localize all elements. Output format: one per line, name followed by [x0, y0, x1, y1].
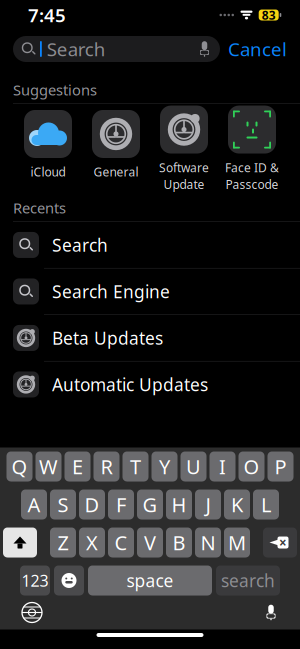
button[interactable]: Delete [263, 527, 297, 557]
staticText: B [172, 529, 185, 556]
button[interactable]: T [122, 451, 148, 481]
button[interactable]: Search [0, 222, 300, 268]
button[interactable]: B [166, 527, 192, 557]
staticText: I [219, 453, 226, 480]
button[interactable]: General [82, 110, 150, 194]
staticText: Y [159, 453, 170, 480]
staticText: × [279, 534, 287, 551]
button[interactable]: Next keyboard [16, 596, 48, 628]
button[interactable]: Software [150, 110, 218, 194]
button[interactable]: A [21, 489, 47, 519]
button[interactable]: L [253, 489, 279, 519]
button[interactable]: H [166, 489, 192, 519]
button[interactable]: Y [151, 451, 177, 481]
button[interactable]: J [195, 489, 221, 519]
staticText: U [186, 453, 201, 480]
staticText: General [93, 164, 138, 180]
button[interactable]: D [79, 489, 105, 519]
staticText: H [171, 491, 186, 518]
button[interactable]: Emoji [54, 565, 84, 595]
button[interactable]: search [216, 565, 280, 595]
button[interactable]: R [93, 451, 119, 481]
staticText: 123 [21, 570, 48, 591]
button[interactable]: K [224, 489, 250, 519]
button[interactable]: Automatic Updates [0, 361, 300, 407]
staticText: C [114, 529, 127, 556]
staticText: Q [11, 453, 27, 480]
button[interactable]: Shift [3, 527, 37, 557]
staticText: L [261, 491, 271, 518]
button[interactable]: Q [6, 451, 32, 481]
staticText: Z [57, 529, 68, 556]
staticText: Cancel [228, 37, 287, 61]
button[interactable]: P [267, 451, 293, 481]
staticText: 7:45 [28, 3, 66, 27]
staticText: Software [159, 159, 209, 175]
staticText: T [130, 453, 141, 480]
staticText: W [39, 453, 58, 480]
staticText: K [231, 491, 243, 518]
staticText: N [200, 529, 215, 556]
staticText: M [228, 529, 246, 556]
staticText: Passcode [225, 176, 278, 192]
staticText: V [144, 529, 156, 556]
staticText: F [116, 491, 126, 518]
staticText: D [84, 491, 99, 518]
button[interactable]: S [50, 489, 76, 519]
staticText: R [100, 453, 112, 480]
button[interactable]: U [180, 451, 206, 481]
staticText: Face ID & [225, 159, 279, 175]
button[interactable]: I [209, 451, 235, 481]
button[interactable]: Beta Updates [0, 315, 300, 361]
staticText: X [86, 529, 98, 556]
button[interactable]: G [137, 489, 163, 519]
button[interactable]: Dictation [258, 597, 284, 628]
staticText: P [274, 453, 286, 480]
button[interactable]: O [238, 451, 264, 481]
button[interactable]: Search [13, 36, 220, 62]
staticText: Search Engine [52, 280, 170, 303]
staticText: J [205, 491, 210, 518]
button[interactable]: iCloud [14, 110, 82, 194]
button[interactable]: 123 [20, 565, 50, 595]
button[interactable]: W [35, 451, 61, 481]
button[interactable]: E [64, 451, 90, 481]
staticText: G [142, 491, 157, 518]
button[interactable]: N [195, 527, 221, 557]
staticText: Update [163, 176, 204, 192]
staticText: Search [47, 37, 106, 61]
button[interactable]: M [224, 527, 250, 557]
button[interactable]: Face ID & [218, 110, 286, 194]
button[interactable]: F [108, 489, 134, 519]
staticText: Beta Updates [52, 326, 163, 349]
button[interactable]: Cancel [228, 37, 287, 61]
staticText: A [27, 491, 40, 518]
staticText: S [57, 491, 68, 518]
staticText: E [72, 453, 83, 480]
staticText: space [126, 569, 173, 592]
staticText: Suggestions [13, 80, 97, 99]
staticText: Automatic Updates [52, 373, 208, 396]
button[interactable]: Z [50, 527, 76, 557]
button[interactable]: C [108, 527, 134, 557]
button[interactable]: Search Engine [0, 268, 300, 315]
staticText: 83 [262, 7, 276, 23]
button[interactable]: X [79, 527, 105, 557]
staticText: Search [52, 233, 108, 256]
staticText: O [243, 453, 259, 480]
staticText: search [221, 569, 275, 592]
button[interactable]: space [88, 565, 212, 595]
staticText: Recents [13, 198, 66, 217]
staticText: iCloud [30, 164, 65, 180]
button[interactable]: V [137, 527, 163, 557]
